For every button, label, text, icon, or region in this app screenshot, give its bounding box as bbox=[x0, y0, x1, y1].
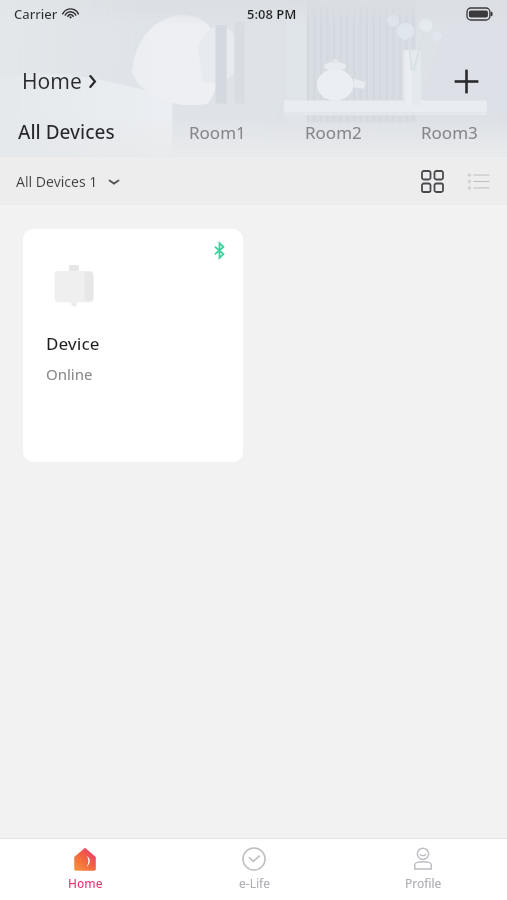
staticText: Home bbox=[22, 67, 82, 96]
staticText: 5:08 PM bbox=[247, 5, 297, 23]
button[interactable]: Room2 bbox=[275, 117, 391, 148]
button[interactable]: Home bbox=[20, 61, 100, 102]
staticText: Home bbox=[68, 875, 103, 891]
staticText: Profile bbox=[405, 875, 442, 891]
staticText: All Devices 1 bbox=[16, 172, 98, 191]
button[interactable]: Bluetooth connected bbox=[23, 229, 243, 462]
button[interactable]: Room1 bbox=[160, 117, 275, 148]
button[interactable]: Grid view bbox=[411, 160, 453, 202]
other: Bluetooth connected bbox=[209, 240, 229, 260]
staticText: Carrier bbox=[14, 5, 58, 23]
staticText: Device bbox=[46, 332, 100, 355]
staticText: Online bbox=[46, 364, 93, 384]
button[interactable]: Home bbox=[25, 843, 145, 895]
staticText: All Devices bbox=[18, 119, 115, 145]
staticText: Room2 bbox=[305, 121, 362, 144]
button[interactable]: All Devices bbox=[0, 115, 160, 149]
button[interactable]: Profile bbox=[363, 843, 483, 895]
button[interactable]: Room3 bbox=[391, 117, 507, 148]
staticText: Room1 bbox=[189, 121, 246, 144]
button[interactable]: Add device bbox=[445, 60, 487, 102]
button[interactable]: e-Life bbox=[194, 843, 314, 895]
staticText: Room3 bbox=[421, 121, 478, 144]
button[interactable]: List view bbox=[457, 160, 499, 202]
staticText: e-Life bbox=[239, 875, 270, 891]
button[interactable]: All Devices 1 bbox=[0, 166, 131, 197]
